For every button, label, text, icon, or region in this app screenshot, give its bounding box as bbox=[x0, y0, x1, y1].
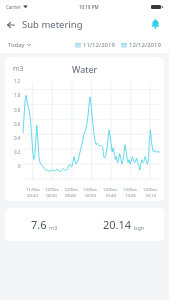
staticText: bgn bbox=[134, 224, 145, 231]
button[interactable]: Notifications bbox=[143, 13, 167, 36]
staticText: 13:26 bbox=[125, 193, 136, 199]
staticText: 12/Dec bbox=[123, 187, 137, 193]
staticText: 1.2 bbox=[14, 78, 21, 84]
staticText: Carrier bbox=[6, 4, 21, 10]
button[interactable]: Back bbox=[0, 14, 22, 36]
staticText: 05:06 bbox=[65, 193, 76, 199]
staticText: m3 bbox=[13, 64, 24, 74]
staticText: Water bbox=[72, 63, 98, 75]
button[interactable]: Today bbox=[8, 41, 31, 49]
staticText: 0.2 bbox=[14, 149, 21, 155]
staticText: 12/Dec bbox=[64, 187, 78, 193]
button[interactable]: 12/12/2019 bbox=[121, 41, 161, 49]
staticText: 12/Dec bbox=[83, 187, 97, 193]
staticText: 0.8 bbox=[14, 107, 21, 113]
staticText: 7.6 bbox=[31, 217, 47, 232]
staticText: Today bbox=[8, 41, 25, 49]
staticText: 0 bbox=[18, 163, 21, 169]
staticText: 11/Dec bbox=[26, 187, 40, 193]
staticText: 10:18 PM bbox=[79, 4, 99, 10]
staticText: Sub metering bbox=[22, 18, 83, 31]
staticText: 12/Dec bbox=[143, 187, 157, 193]
staticText: 20.14 bbox=[103, 217, 132, 232]
staticText: 02:20 bbox=[46, 193, 57, 199]
staticText: 0.4 bbox=[14, 135, 21, 141]
staticText: 10:40 bbox=[105, 193, 116, 199]
button[interactable]: m3 bbox=[5, 57, 164, 201]
staticText: m3 bbox=[49, 224, 58, 231]
staticText: 11/12/2019 bbox=[83, 41, 115, 49]
button[interactable]: 11/12/2019 bbox=[75, 41, 115, 49]
staticText: 23:33 bbox=[27, 193, 38, 199]
staticText: 07:53 bbox=[85, 193, 96, 199]
staticText: 12/12/2019 bbox=[129, 41, 161, 49]
staticText: 1.0 bbox=[14, 92, 21, 98]
staticText: 12/Dec bbox=[45, 187, 59, 193]
staticText: 12/Dec bbox=[103, 187, 117, 193]
staticText: 0.6 bbox=[14, 121, 21, 127]
button[interactable]: 7.6 bbox=[5, 208, 164, 241]
staticText: 16:13 bbox=[145, 193, 156, 199]
